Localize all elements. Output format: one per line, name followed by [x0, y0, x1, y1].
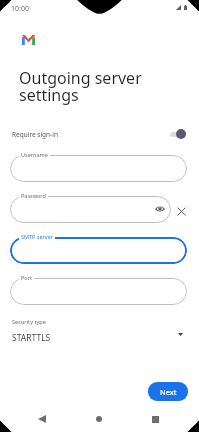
staticText: STARTTLS — [12, 332, 51, 344]
button[interactable]: Require sign-in — [0, 126, 199, 142]
button[interactable] — [10, 196, 171, 223]
staticText: Outgoing server — [19, 67, 142, 89]
button[interactable] — [10, 237, 187, 264]
staticText: Port — [21, 274, 32, 281]
staticText: settings — [19, 84, 79, 106]
button[interactable]: Recents — [137, 406, 173, 432]
button[interactable] — [10, 155, 187, 182]
button[interactable]: Clear — [174, 205, 189, 218]
staticText: Require sign-in — [12, 130, 58, 139]
staticText: Username — [21, 151, 48, 158]
button[interactable]: Show password — [153, 202, 166, 215]
button[interactable]: Back — [24, 406, 60, 432]
button[interactable] — [10, 278, 187, 305]
staticText: SMTP server — [21, 233, 53, 240]
staticText: Password — [21, 192, 46, 199]
staticText: Next — [160, 387, 177, 397]
button[interactable]: Home — [81, 406, 117, 432]
staticText: 10:00 — [11, 4, 29, 14]
button[interactable]: Next — [148, 382, 188, 401]
button[interactable]: Security type — [0, 314, 199, 344]
staticText: Security type — [12, 318, 46, 326]
